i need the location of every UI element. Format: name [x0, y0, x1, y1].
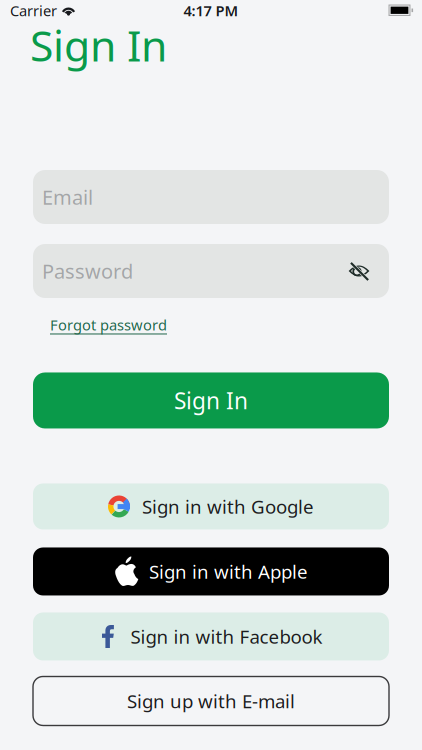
staticText: Forgot password — [50, 315, 167, 334]
staticText: Sign up with E-mail — [127, 689, 295, 713]
staticText: Sign in with Facebook — [130, 624, 322, 649]
staticText: Password — [42, 258, 133, 284]
staticText: Sign in with Apple — [149, 559, 308, 584]
button[interactable]: Sign up with E-mail — [33, 676, 389, 725]
button[interactable]: Sign in with Apple — [33, 547, 389, 595]
staticText: 4:17 PM — [183, 1, 238, 20]
button[interactable]: Sign In — [33, 372, 389, 428]
staticText: Email — [42, 184, 93, 210]
staticText: Carrier — [10, 1, 57, 20]
button[interactable]: Sign in with Facebook — [33, 612, 389, 660]
button[interactable]: Forgot password — [50, 315, 167, 334]
staticText: Sign In — [174, 385, 248, 415]
staticText: Sign in with Google — [142, 494, 314, 519]
button[interactable]: Sign in with Google — [33, 483, 389, 529]
staticText: Sign In — [30, 17, 167, 73]
button[interactable]: Show password — [348, 261, 380, 281]
